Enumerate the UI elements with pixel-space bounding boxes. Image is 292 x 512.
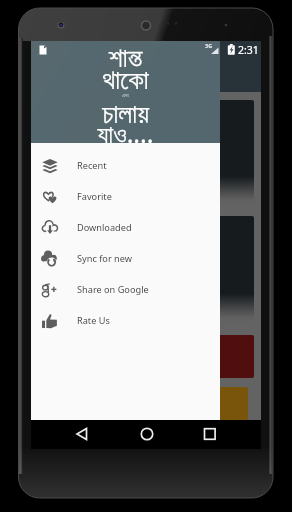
button[interactable]: Downloaded <box>31 212 220 243</box>
button[interactable]: Favorite <box>31 181 220 212</box>
staticText: Sync for new <box>77 252 133 265</box>
staticText: Downloaded <box>77 221 132 234</box>
staticText: Favorite <box>77 190 112 203</box>
button[interactable]: Recent <box>31 150 220 181</box>
staticText: এবং <box>31 92 220 98</box>
staticText: Share on Google <box>77 283 149 296</box>
staticText: থাকো <box>31 67 220 94</box>
staticText: যাও.... <box>31 116 220 150</box>
staticText: 3G <box>205 42 213 49</box>
staticText: Rate Us <box>77 314 110 327</box>
button[interactable]: Share on Google <box>31 274 220 305</box>
staticText: 2:31 <box>238 43 259 57</box>
button[interactable]: Rate Us <box>31 305 220 336</box>
staticText: চালায় <box>31 101 220 128</box>
staticText: Recent <box>77 159 107 172</box>
staticText: শান্ত <box>31 45 220 72</box>
button[interactable]: Sync for new <box>31 243 220 274</box>
